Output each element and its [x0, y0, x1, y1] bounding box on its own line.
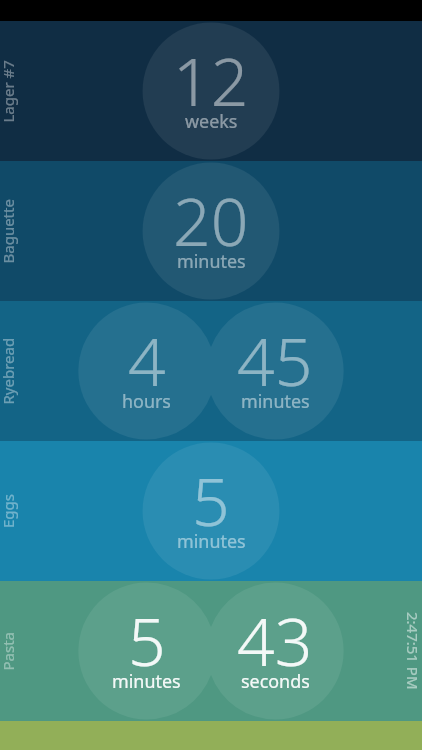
- staticText: minutes: [177, 529, 246, 553]
- staticText: Baguette: [0, 198, 17, 263]
- staticText: 5: [192, 455, 230, 545]
- staticText: 12: [173, 35, 249, 125]
- staticText: 5: [128, 595, 166, 685]
- staticText: 43: [237, 595, 313, 685]
- staticText: Ryebread: [0, 337, 17, 404]
- staticText: seconds: [241, 669, 310, 693]
- staticText: minutes: [112, 669, 181, 693]
- button[interactable]: Eggs, 5 minutes: [0, 441, 422, 581]
- staticText: Lager #7: [0, 59, 17, 122]
- staticText: 45: [237, 315, 313, 405]
- staticText: 4: [128, 315, 166, 405]
- staticText: 2:47:51 PM: [403, 612, 422, 690]
- button[interactable]: Pasta, 5 minutes 43 seconds: [0, 581, 422, 721]
- staticText: minutes: [177, 249, 246, 273]
- staticText: weeks: [185, 109, 238, 133]
- button[interactable]: Ryebread, 4 hours 45 minutes: [0, 301, 422, 441]
- staticText: minutes: [241, 389, 310, 413]
- button[interactable]: Lager #7, 12 weeks: [0, 21, 422, 161]
- staticText: Pasta: [0, 631, 17, 670]
- staticText: 20: [173, 175, 249, 265]
- staticText: hours: [122, 389, 171, 413]
- button[interactable]: Baguette, 20 minutes: [0, 161, 422, 301]
- staticText: Eggs: [0, 494, 18, 528]
